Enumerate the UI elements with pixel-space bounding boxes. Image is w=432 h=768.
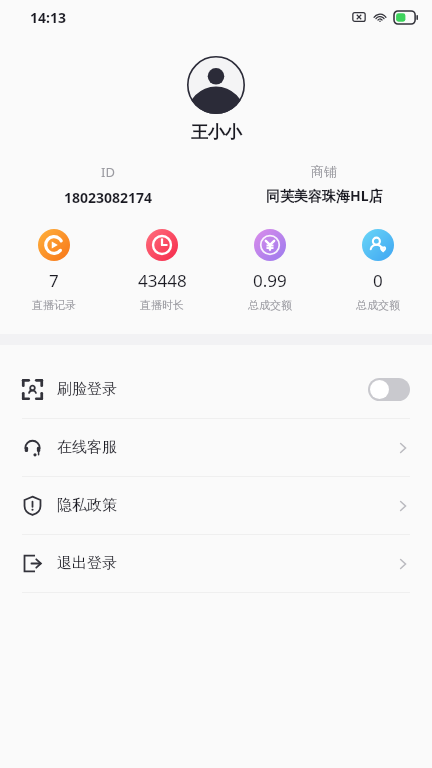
button[interactable]: 隐私政策	[0, 477, 432, 534]
staticText: ID	[101, 163, 115, 181]
staticText: 43448	[138, 269, 187, 292]
staticText: 总成交额	[356, 298, 400, 312]
staticText: 总成交额	[248, 298, 292, 312]
button[interactable]: 0	[324, 229, 432, 312]
staticText: 同芙美容珠海HL店	[266, 186, 383, 205]
staticText: 0.99	[253, 269, 287, 292]
staticText: 14:13	[30, 8, 66, 27]
button[interactable]: 43448	[108, 229, 216, 312]
staticText: 直播时长	[140, 298, 184, 312]
staticText: 在线客服	[57, 438, 117, 457]
staticText: 退出登录	[57, 554, 117, 573]
staticText: 7	[49, 269, 59, 292]
button[interactable]: 刷脸登录	[0, 361, 432, 418]
button[interactable]: 在线客服	[0, 419, 432, 476]
staticText: 商铺	[311, 163, 337, 179]
staticText: 0	[373, 269, 383, 292]
button[interactable]: 退出登录	[0, 535, 432, 592]
button[interactable]: 7	[0, 229, 108, 312]
staticText: 刷脸登录	[57, 380, 117, 399]
staticText: 王小小	[191, 122, 242, 143]
staticText: 隐私政策	[57, 496, 117, 515]
staticText: 直播记录	[32, 298, 76, 312]
button[interactable]: Face login toggle	[368, 378, 410, 401]
button[interactable]: 0.99	[216, 229, 324, 312]
staticText: 18023082174	[64, 188, 153, 207]
